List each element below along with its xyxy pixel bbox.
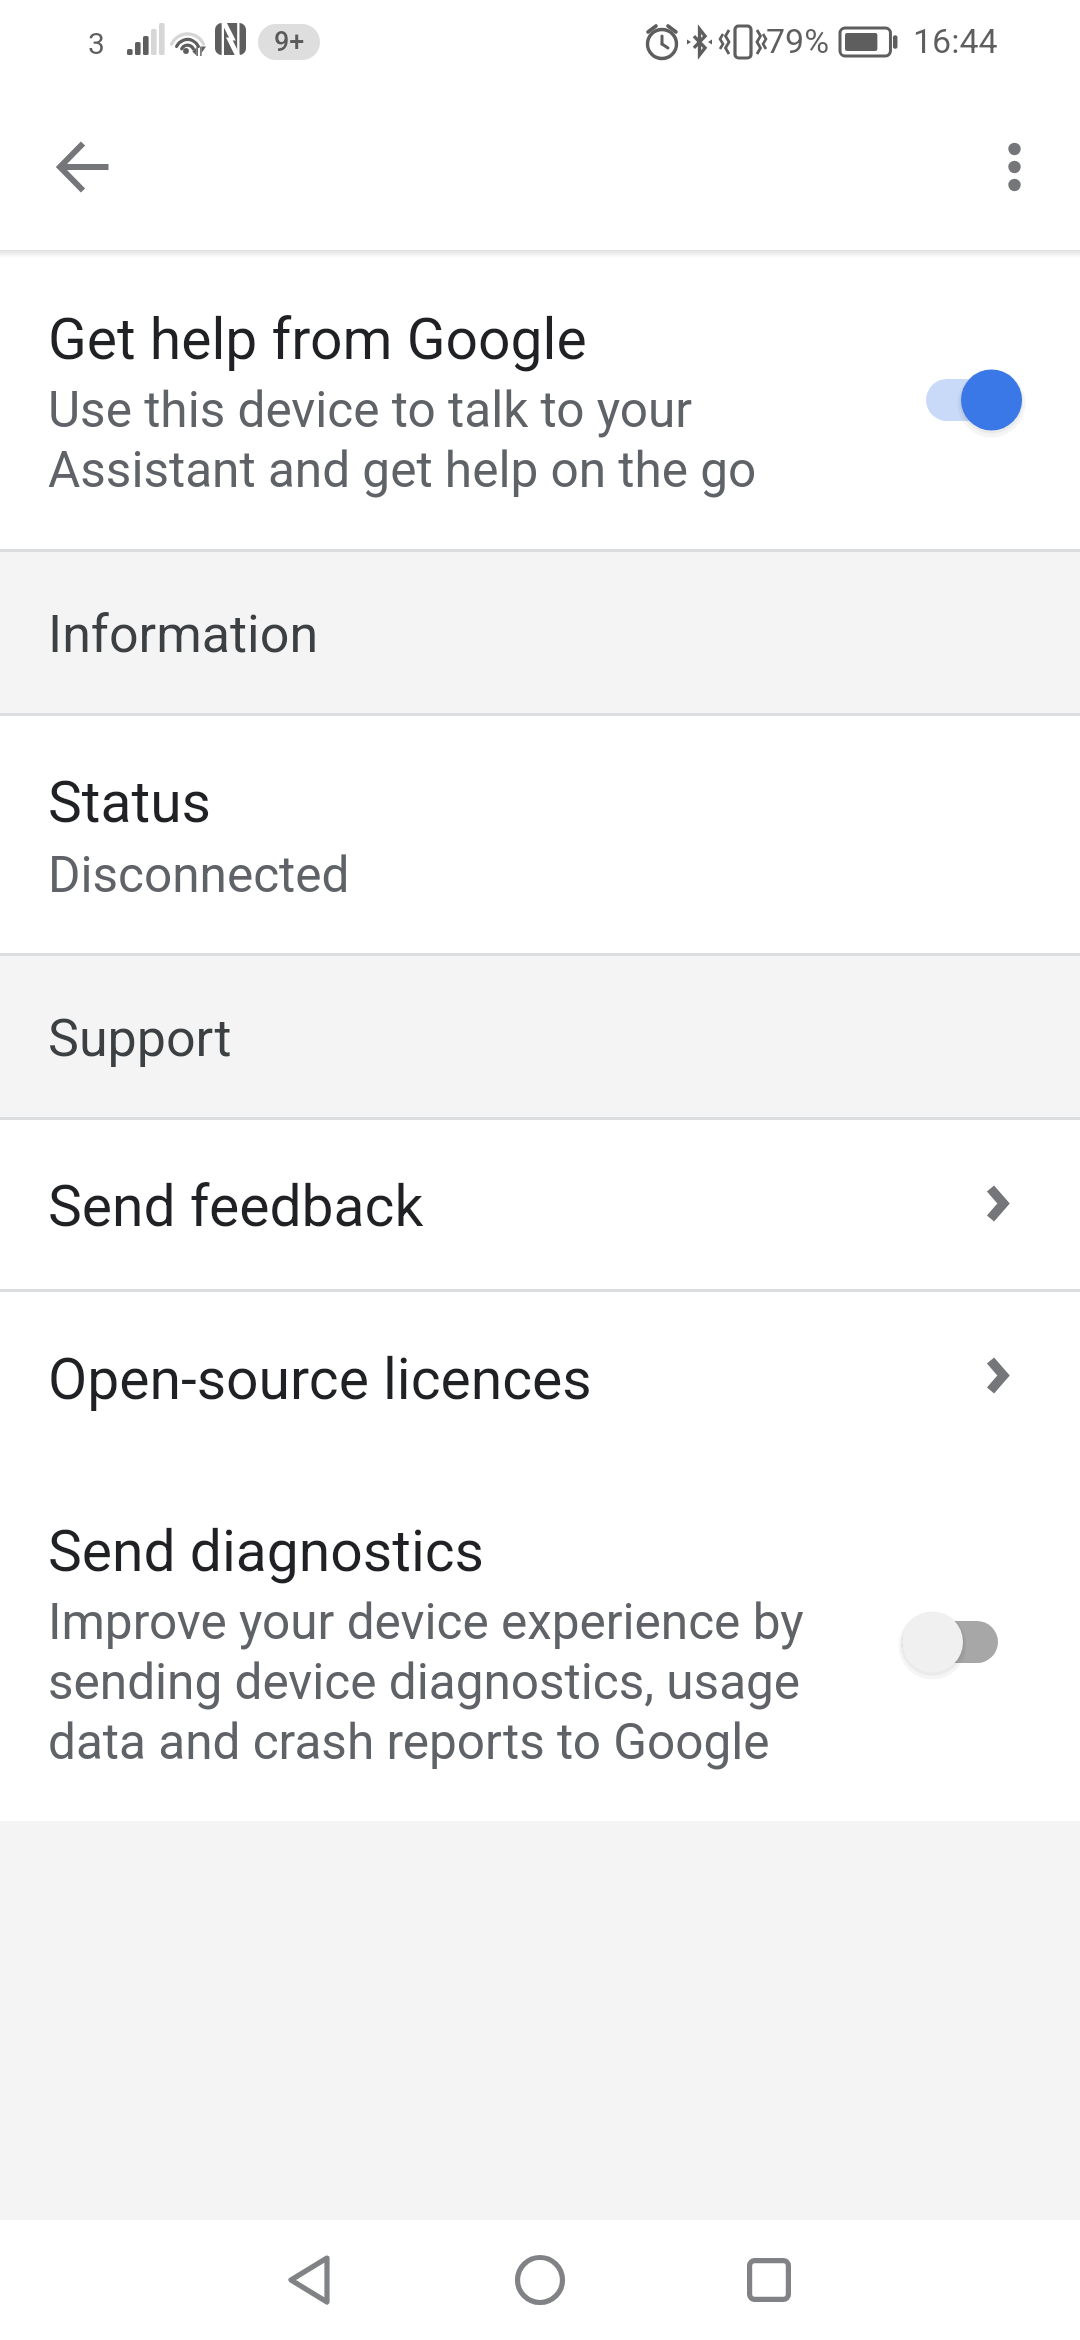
staticText: Status [48, 769, 211, 836]
button[interactable]: Open-source licences [0, 1292, 1080, 1462]
button[interactable]: Status [0, 716, 1080, 953]
button[interactable]: Toggle off [902, 1597, 1032, 1687]
staticText: Open-source licences [48, 1346, 986, 1413]
button[interactable]: Send feedback [0, 1120, 1080, 1289]
button[interactable]: Get help from Google [0, 250, 1080, 549]
button[interactable]: Back [24, 107, 144, 227]
staticText: Send feedback [48, 1173, 986, 1240]
button[interactable]: Home [480, 2220, 600, 2340]
staticText: Disconnected [48, 846, 350, 904]
staticText: Use this device to talk to your Assistan… [48, 381, 757, 499]
staticText: Improve your device experience by sendin… [48, 1593, 804, 1771]
staticText: Send diagnostics [48, 1518, 485, 1585]
button[interactable]: Send diagnostics [0, 1462, 1080, 1821]
staticText: 16:44 [913, 21, 998, 61]
staticText: 79% [766, 21, 830, 61]
staticText: Support [48, 1008, 232, 1069]
staticText: 3 [88, 26, 105, 61]
staticText: Get help from Google [48, 306, 587, 373]
button[interactable]: More options [964, 112, 1074, 222]
button[interactable]: Recent apps [709, 2220, 829, 2340]
button[interactable]: Toggle on [902, 355, 1032, 445]
staticText: 9+ [274, 26, 305, 58]
staticText: Information [48, 604, 319, 665]
button[interactable]: Back [248, 2220, 368, 2340]
